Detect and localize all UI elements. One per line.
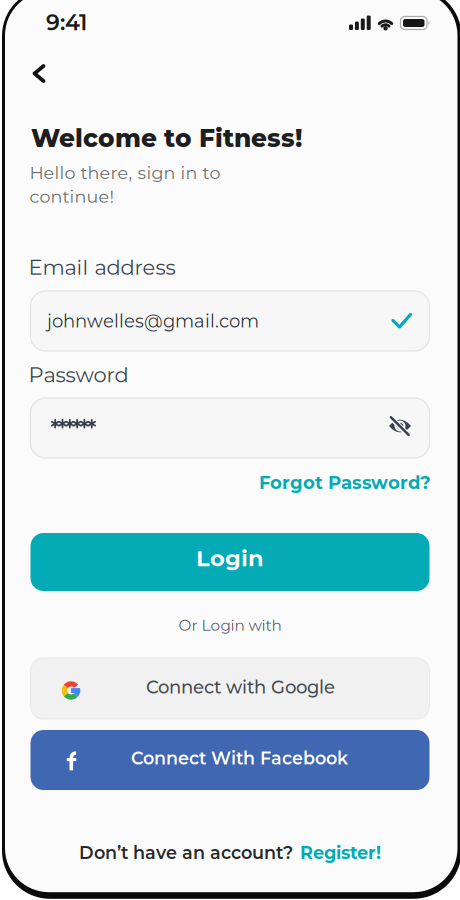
staticText: Email address (28, 254, 175, 280)
staticText: Forgot Password? (259, 471, 431, 493)
staticText: 9:41 (46, 9, 87, 36)
staticText: Hello there, sign in to continue! (29, 162, 220, 207)
staticText: Don’t have an account? (79, 842, 293, 863)
staticText: Password (28, 362, 128, 388)
staticText: Register! (300, 842, 381, 863)
staticText: Login (196, 544, 264, 572)
staticText: Welcome to Fitness! (31, 123, 302, 153)
staticText: Connect with Google (146, 676, 335, 698)
staticText: Or Login with (178, 616, 281, 635)
staticText: Connect With Facebook (131, 747, 348, 769)
staticText: johnwelles@gmail.com (47, 310, 259, 332)
